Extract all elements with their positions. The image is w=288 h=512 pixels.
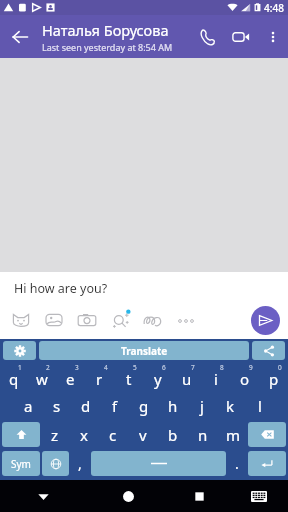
button[interactable]: z [40,422,69,447]
button[interactable]: Stickers [10,309,32,331]
button[interactable]: Doodle [142,309,164,331]
button[interactable]: Home [87,480,170,512]
button[interactable]: Call [190,20,224,54]
button[interactable]: Recent apps [170,480,229,512]
button[interactable]: a [14,391,42,420]
button[interactable]: More options [258,22,288,52]
button[interactable]: 5 [114,362,143,391]
staticText: t [126,369,132,389]
staticText: Наталья Борусова [42,20,169,40]
button[interactable]: Backspace [248,422,286,447]
button[interactable]: Translate [39,341,249,360]
button[interactable]: Enter [248,451,286,476]
button[interactable]: k [216,391,245,420]
button[interactable]: Share [252,341,285,360]
staticText: d [81,396,91,416]
button[interactable]: h [158,391,187,420]
staticText: g [139,396,149,416]
staticText: x [80,425,88,445]
staticText: b [168,425,178,445]
button[interactable]: 7 [172,362,201,391]
button[interactable]: Shift [2,422,40,447]
staticText: l [258,396,262,416]
staticText: e [66,369,75,389]
staticText: 4 [104,363,108,372]
button[interactable]: m [218,422,248,447]
button[interactable]: Send [251,306,280,335]
button[interactable]: Hide keyboard [229,480,288,512]
staticText: 2 [46,363,50,372]
staticText: j [200,396,204,416]
staticText: Hi how are you? [14,280,108,297]
staticText: Last seen yesterday at 8:54 AM [42,41,173,53]
button[interactable]: 4 [85,362,114,391]
staticText: r [96,369,103,389]
staticText: u [182,369,192,389]
staticText: z [51,425,59,445]
staticText: c [109,425,117,445]
button[interactable]: Camera [76,309,98,331]
button[interactable]: 0 [259,362,288,391]
button[interactable]: Video call [224,20,258,54]
button[interactable]: Sym [2,451,40,476]
button[interactable]: 6 [143,362,172,391]
button[interactable]: b [158,422,188,447]
staticText: p [269,369,279,389]
button[interactable]: Back [0,480,87,512]
staticText: w [36,369,48,389]
staticText: m [226,425,241,445]
button[interactable]: s [42,391,71,420]
staticText: f [112,396,118,416]
staticText: 0 [278,363,282,372]
button[interactable]: n [188,422,218,447]
staticText: 6 [162,363,166,372]
staticText: , [78,454,82,473]
staticText: 1 [18,363,22,372]
button[interactable]: , [69,451,91,476]
button[interactable]: 8 [201,362,230,391]
staticText: 5 [133,363,137,372]
staticText: k [226,396,235,416]
button[interactable]: More [175,309,197,331]
staticText: y [154,369,162,389]
staticText: s [53,396,61,416]
button[interactable]: x [69,422,98,447]
button[interactable]: g [129,391,158,420]
staticText: v [139,425,147,445]
button[interactable]: Gallery [43,309,65,331]
button[interactable]: j [187,391,216,420]
button[interactable]: Keyboard settings [3,341,36,360]
staticText: 3 [75,363,79,372]
staticText: Translate [121,344,168,358]
staticText: o [240,369,250,389]
button[interactable]: c [98,422,128,447]
staticText: h [168,396,178,416]
staticText: 4:48 [264,1,284,15]
staticText: Sym [11,457,31,471]
button[interactable]: . [226,451,248,476]
staticText: a [24,396,33,416]
button[interactable]: f [100,391,129,420]
staticText: n [198,425,208,445]
button[interactable]: 1 [0,362,28,391]
button[interactable]: 9 [230,362,259,391]
button[interactable]: 3 [56,362,85,391]
staticText: 7 [191,363,195,372]
button[interactable]: Effects [109,309,131,331]
button[interactable]: v [128,422,158,447]
button[interactable]: l [245,391,274,420]
staticText: . [235,454,239,473]
staticText: q [9,369,19,389]
staticText: 8 [220,363,224,372]
button[interactable]: Back [0,17,40,57]
button[interactable]: Space [91,451,226,476]
button[interactable]: 2 [28,362,56,391]
staticText: 9 [249,363,253,372]
button[interactable]: Change language [42,451,69,476]
button[interactable]: d [71,391,100,420]
staticText: i [214,369,218,389]
